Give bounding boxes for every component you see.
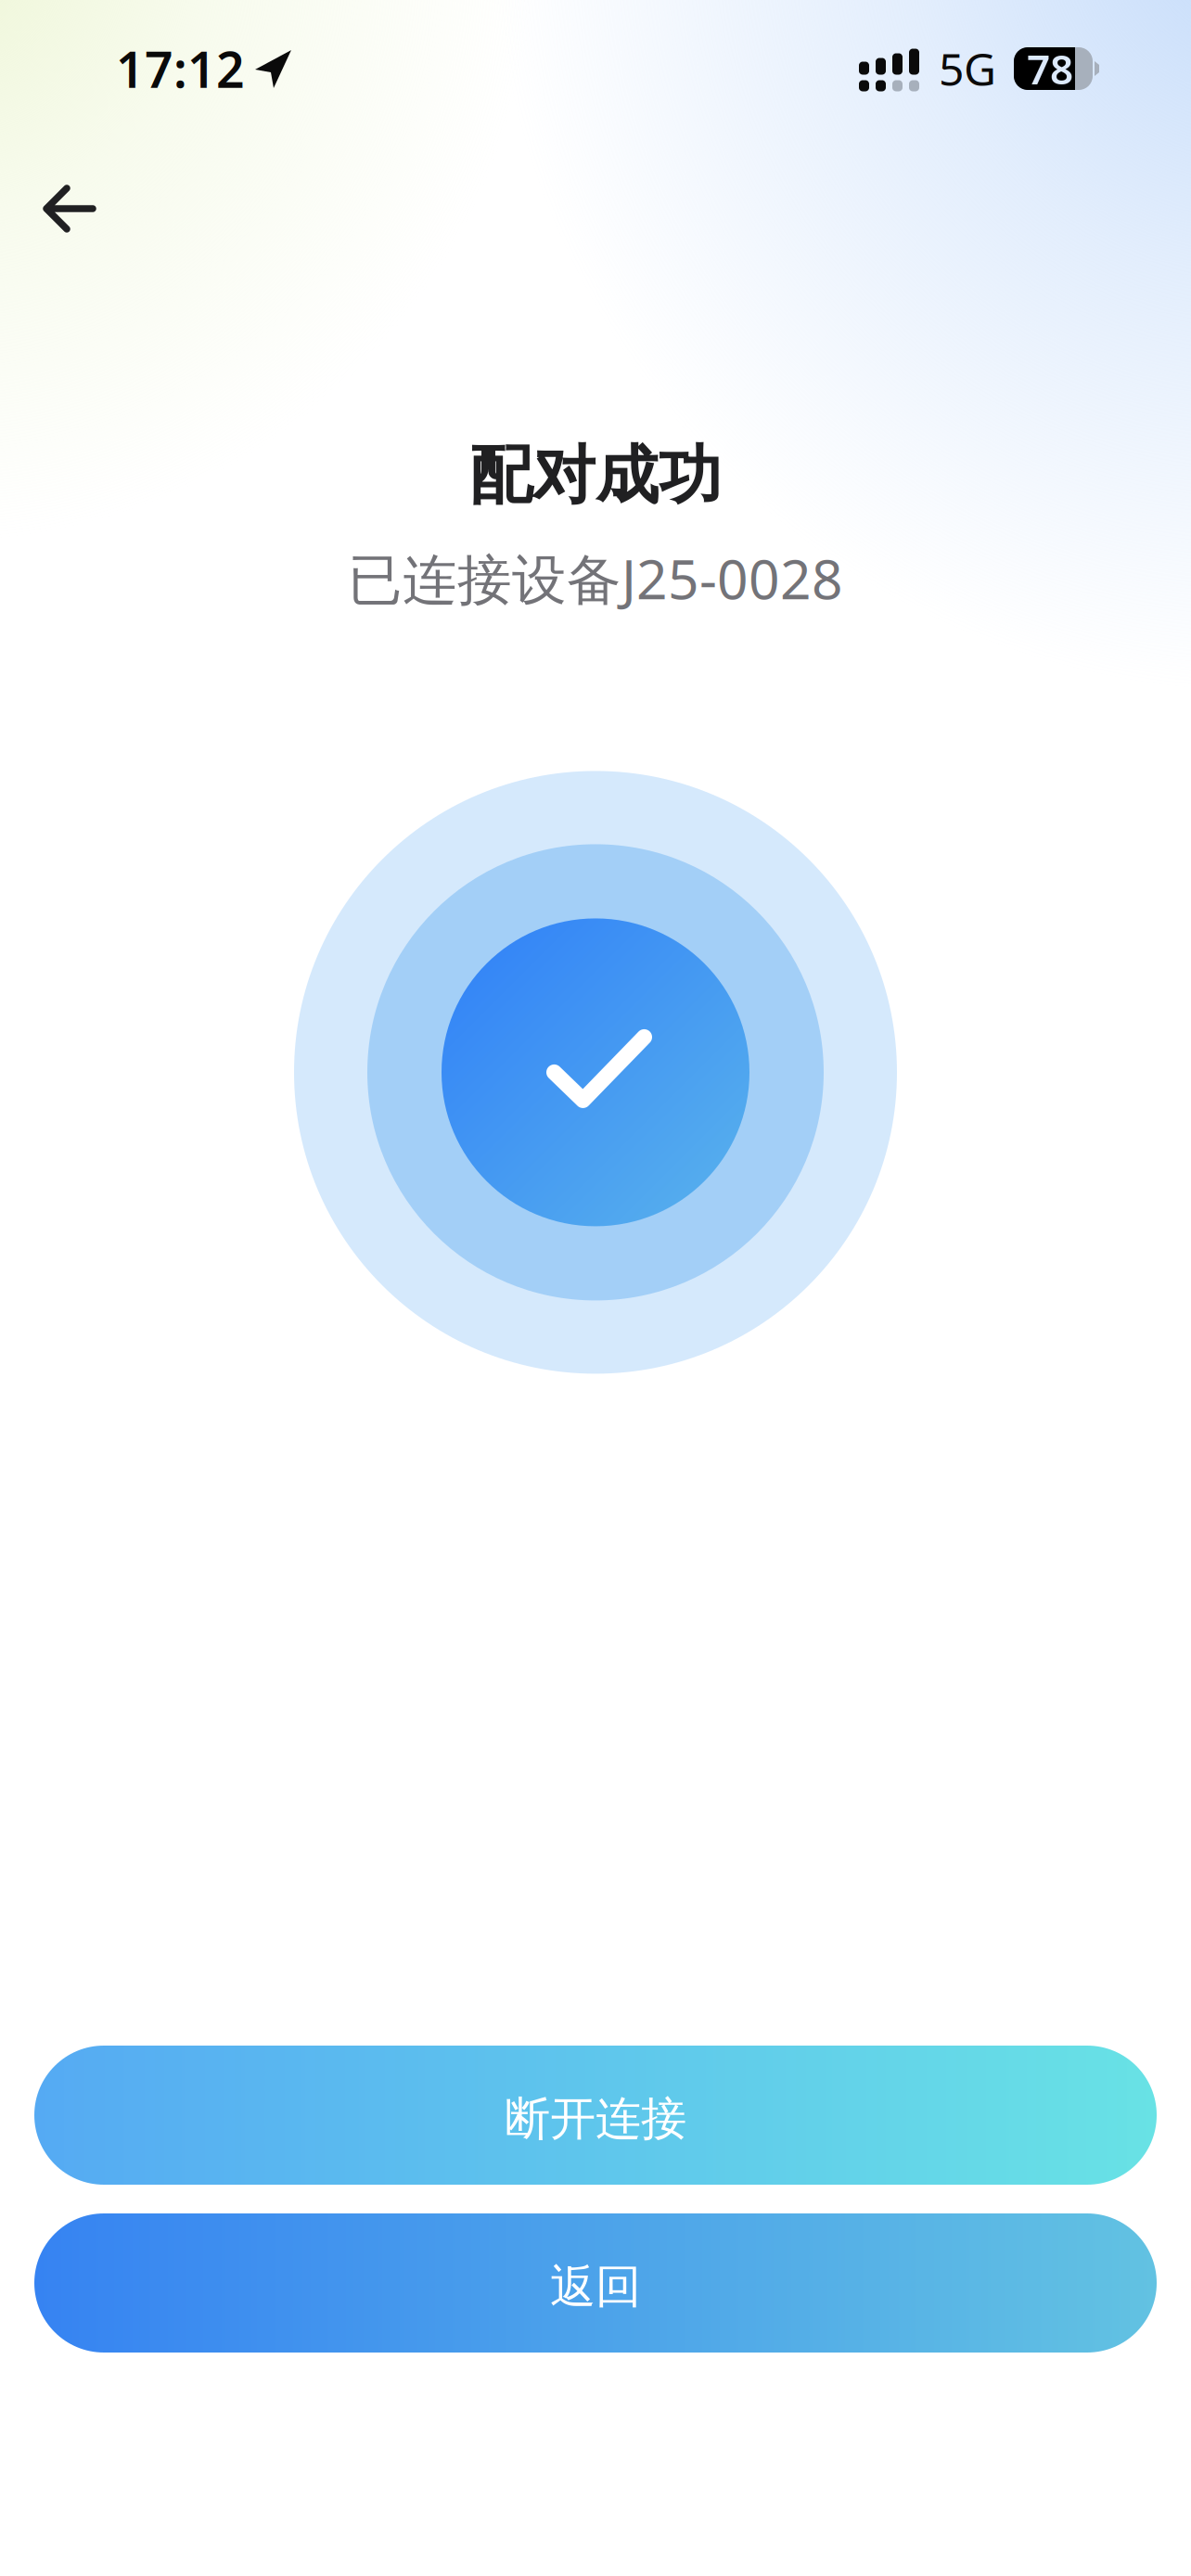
button[interactable]: 断开连接	[34, 2046, 1157, 2185]
staticText: 断开连接	[505, 2091, 686, 2147]
staticText: 配对成功	[469, 437, 722, 514]
staticText: 5G	[939, 39, 996, 98]
staticText: 78	[1027, 42, 1073, 96]
button[interactable]: 返回	[34, 2213, 1157, 2353]
staticText: 17:12	[116, 36, 245, 101]
button[interactable]: Back	[0, 137, 124, 256]
staticText: 返回	[550, 2259, 641, 2315]
staticText: 已连接设备J25-0028	[348, 542, 843, 614]
